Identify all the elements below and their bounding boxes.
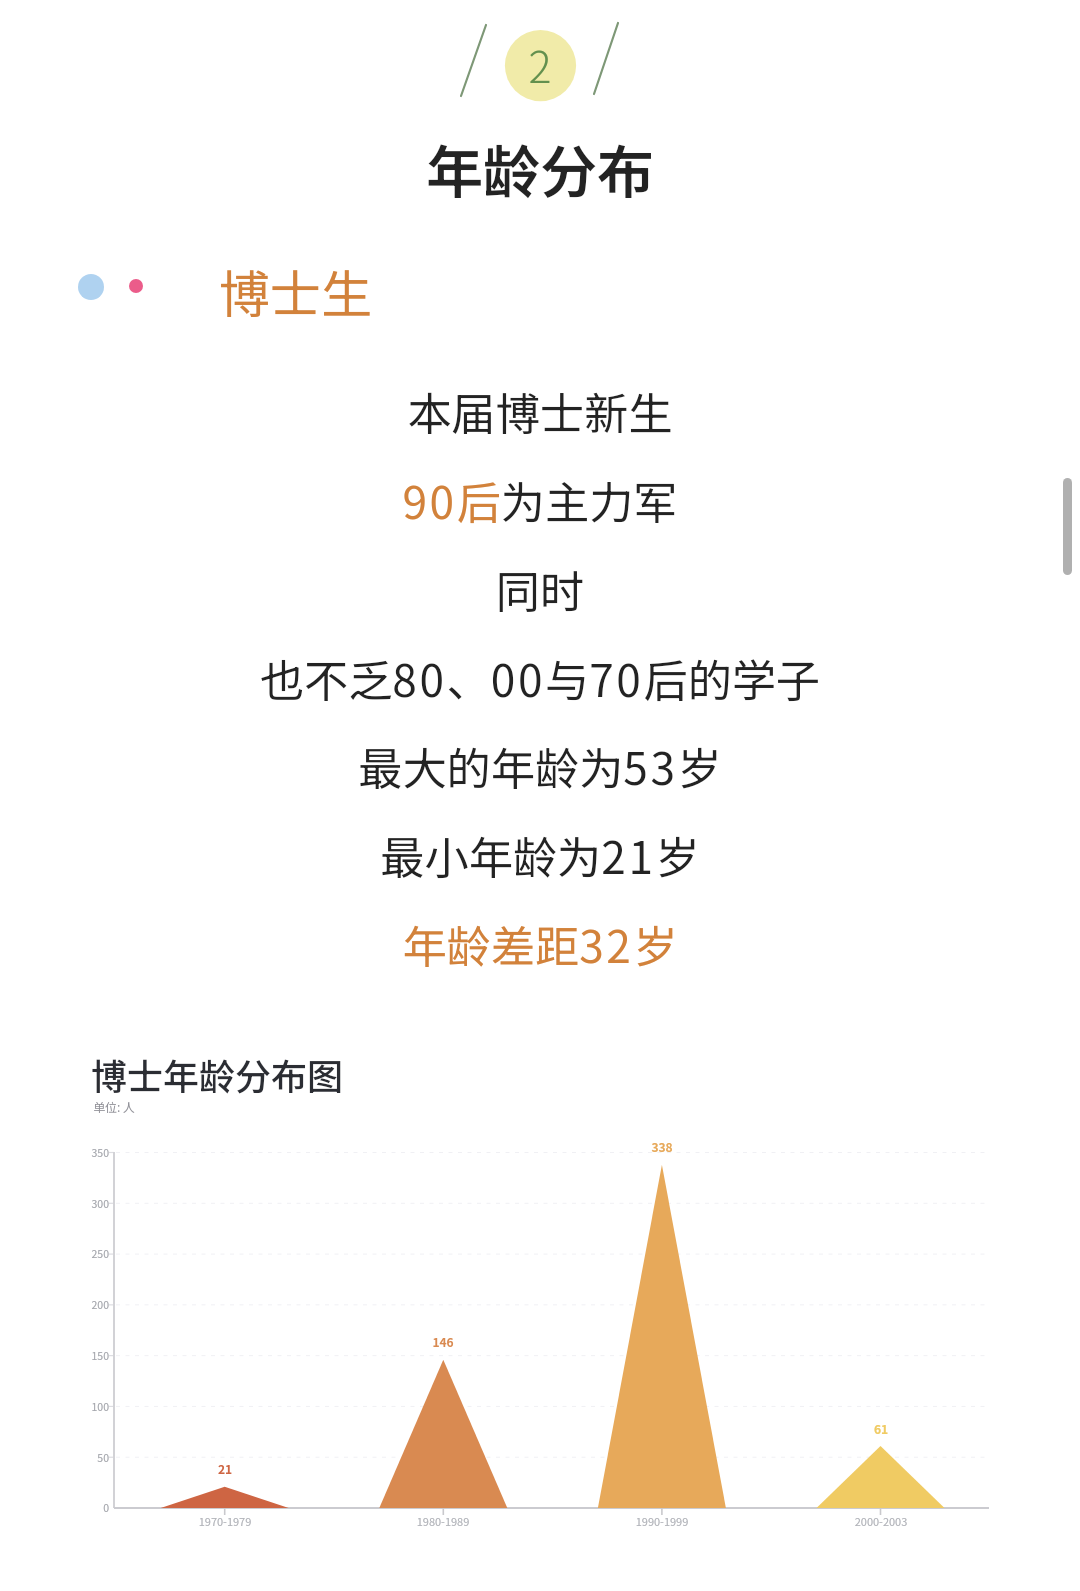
staticText: 338 — [602, 1138, 722, 1155]
staticText: 1990-1999 — [582, 1513, 742, 1529]
staticText: 0 — [45, 1500, 109, 1515]
button[interactable]: 博士年龄分布图 — [60, 1046, 1020, 1546]
staticText: 90后为主力军 — [0, 468, 1080, 532]
staticText: 2000-2003 — [801, 1513, 961, 1529]
staticText: 2 — [504, 33, 576, 95]
button[interactable]: 博士生 — [60, 258, 400, 328]
staticText: 1980-1989 — [363, 1513, 523, 1529]
staticText: 博士生 — [219, 254, 373, 324]
staticText: 1970-1979 — [145, 1513, 305, 1529]
staticText: 50 — [45, 1450, 109, 1465]
staticText: 本届博士新生 — [0, 379, 1080, 443]
staticText: 100 — [45, 1399, 109, 1414]
staticText: 61 — [821, 1420, 941, 1437]
staticText: 最大的年龄为53岁 — [0, 734, 1080, 798]
staticText: 同时 — [0, 557, 1080, 621]
staticText: 单位: 人 — [93, 1098, 136, 1115]
staticText: 300 — [45, 1196, 109, 1211]
staticText: 年龄分布 — [0, 127, 1080, 210]
staticText: 博士年龄分布图 — [91, 1048, 344, 1100]
staticText: 年龄差距32岁 — [0, 912, 1080, 976]
staticText: 最小年龄为21岁 — [0, 823, 1080, 887]
button[interactable]: Chapter 2 — [504, 30, 576, 102]
staticText: 200 — [45, 1297, 109, 1312]
staticText: 146 — [383, 1333, 503, 1350]
staticText: 21 — [165, 1460, 285, 1477]
staticText: 250 — [45, 1246, 109, 1261]
staticText: 350 — [45, 1145, 109, 1160]
staticText: 也不乏80、00与70后的学子 — [0, 646, 1080, 710]
staticText: 150 — [45, 1348, 109, 1363]
